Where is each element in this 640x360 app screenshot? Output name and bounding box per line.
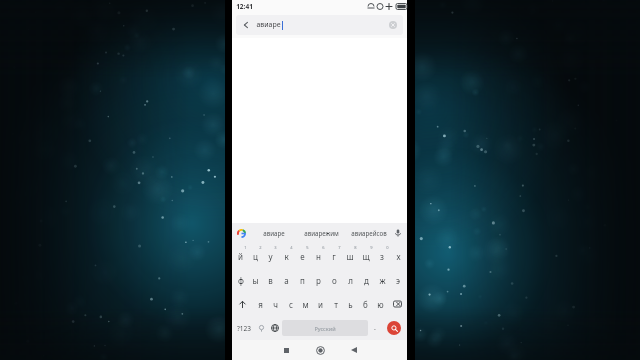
button[interactable]: Voice input: [392, 227, 404, 239]
button[interactable]: й: [233, 244, 248, 268]
staticText: з: [380, 251, 384, 262]
button[interactable]: Shift: [233, 292, 252, 316]
button[interactable]: с: [283, 292, 298, 316]
button[interactable]: л: [342, 268, 358, 292]
button[interactable]: Back: [337, 340, 371, 360]
button[interactable]: н: [310, 244, 326, 268]
button[interactable]: в: [263, 268, 278, 292]
button[interactable]: авиарежим: [298, 223, 345, 243]
staticText: ф: [238, 275, 244, 286]
button[interactable]: ы: [248, 268, 263, 292]
button[interactable]: э: [390, 268, 406, 292]
button[interactable]: Clear: [383, 15, 403, 35]
button[interactable]: Change language: [268, 316, 282, 340]
button[interactable]: ж: [374, 268, 390, 292]
staticText: м: [302, 299, 309, 310]
staticText: 0: [386, 245, 389, 250]
button[interactable]: Back: [236, 15, 403, 35]
staticText: х: [396, 251, 401, 262]
staticText: авиарейсов: [351, 229, 387, 237]
staticText: ж: [379, 275, 386, 286]
button[interactable]: г: [326, 244, 342, 268]
staticText: 5: [306, 245, 309, 250]
staticText: р: [316, 275, 321, 286]
button[interactable]: Google: [235, 227, 247, 239]
staticText: н: [316, 251, 321, 262]
button[interactable]: щ: [358, 244, 374, 268]
button[interactable]: б: [358, 292, 373, 316]
staticText: Русский: [314, 325, 336, 332]
staticText: ?123: [237, 324, 251, 333]
button[interactable]: о: [326, 268, 342, 292]
button[interactable]: и: [313, 292, 328, 316]
staticText: 12:41: [236, 2, 253, 11]
staticText: 6: [322, 245, 325, 250]
staticText: .: [374, 323, 376, 333]
button[interactable]: е: [294, 244, 310, 268]
button[interactable]: д: [358, 268, 374, 292]
staticText: д: [364, 275, 369, 286]
staticText: г: [332, 251, 336, 262]
staticText: авиаре: [256, 20, 281, 30]
staticText: 1: [244, 245, 247, 250]
button[interactable]: з: [374, 244, 390, 268]
button[interactable]: Search: [382, 316, 405, 340]
staticText: й: [238, 251, 243, 262]
button[interactable]: Русский: [282, 320, 368, 336]
staticText: щ: [362, 251, 370, 262]
staticText: 8: [354, 245, 357, 250]
staticText: к: [284, 251, 289, 262]
button[interactable]: ю: [373, 292, 388, 316]
button[interactable]: .: [368, 316, 382, 340]
staticText: авиаре: [263, 229, 285, 237]
staticText: т: [334, 299, 338, 310]
button[interactable]: ч: [268, 292, 283, 316]
staticText: в: [268, 275, 273, 286]
button[interactable]: Recent apps: [269, 340, 303, 360]
button[interactable]: х: [390, 244, 406, 268]
staticText: 7: [338, 245, 341, 250]
staticText: п: [300, 275, 305, 286]
staticText: и: [318, 299, 323, 310]
staticText: ч: [273, 299, 278, 310]
staticText: ы: [252, 275, 259, 286]
button[interactable]: авиарейсов: [345, 223, 392, 243]
button[interactable]: ь: [343, 292, 358, 316]
staticText: л: [348, 275, 353, 286]
button[interactable]: а: [278, 268, 294, 292]
button[interactable]: к: [278, 244, 294, 268]
staticText: ю: [377, 299, 384, 310]
staticText: б: [363, 299, 368, 310]
button[interactable]: авиаре: [250, 223, 298, 243]
staticText: ц: [253, 251, 258, 262]
button[interactable]: р: [310, 268, 326, 292]
button[interactable]: Home: [303, 340, 337, 360]
button[interactable]: м: [298, 292, 313, 316]
staticText: 9: [370, 245, 373, 250]
staticText: авиарежим: [304, 229, 339, 237]
staticText: 3: [274, 245, 277, 250]
button[interactable]: т: [328, 292, 343, 316]
button[interactable]: ?123: [234, 316, 254, 340]
staticText: ш: [346, 251, 354, 262]
staticText: 2: [259, 245, 262, 250]
staticText: с: [289, 299, 293, 310]
staticText: я: [258, 299, 263, 310]
staticText: у: [268, 251, 273, 262]
button[interactable]: у: [263, 244, 278, 268]
staticText: е: [300, 251, 305, 262]
staticText: а: [284, 275, 289, 286]
button[interactable]: я: [252, 292, 268, 316]
button[interactable]: ц: [248, 244, 263, 268]
button[interactable]: п: [294, 268, 310, 292]
button[interactable]: ф: [233, 268, 248, 292]
staticText: ь: [348, 299, 353, 310]
staticText: э: [396, 275, 400, 286]
button[interactable]: Back: [236, 15, 256, 35]
button[interactable]: Emoji: [254, 316, 268, 340]
button[interactable]: ш: [342, 244, 358, 268]
staticText: о: [332, 275, 337, 286]
button[interactable]: Backspace: [388, 292, 406, 316]
staticText: 4: [290, 245, 293, 250]
